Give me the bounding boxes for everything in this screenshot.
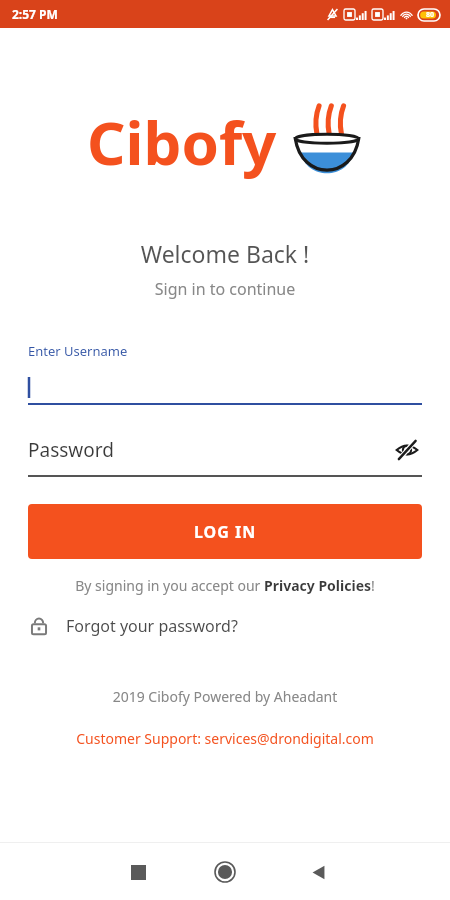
staticText: 80	[426, 10, 435, 20]
staticText: LOG IN	[194, 521, 257, 543]
staticText: Enter Username	[28, 342, 128, 360]
staticText: 2:57 PM	[12, 6, 58, 22]
staticText: Forgot your password?	[66, 615, 238, 637]
staticText: 2019 Cibofy Powered by Aheadant	[0, 687, 450, 706]
staticText: By signing in you accept our Privacy Pol…	[75, 576, 375, 595]
button[interactable]: Back	[298, 852, 338, 892]
button[interactable]: Recents	[118, 852, 158, 892]
staticText: Password	[28, 437, 392, 463]
staticText: Sign in to continue	[0, 278, 450, 300]
button[interactable]: Home	[203, 850, 247, 894]
button[interactable]: Password	[28, 435, 422, 477]
button[interactable]: Enter Username	[28, 342, 422, 405]
button[interactable]: Customer Support: services@drondigital.c…	[0, 729, 450, 748]
staticText: Cibofy	[87, 101, 277, 183]
staticText: Welcome Back !	[0, 238, 450, 269]
button[interactable]: Show password	[392, 435, 422, 465]
button[interactable]: LOG IN	[28, 504, 422, 559]
button[interactable]: By signing in you accept our Privacy Pol…	[0, 576, 450, 595]
button[interactable]: Forgot your password?	[28, 615, 422, 637]
